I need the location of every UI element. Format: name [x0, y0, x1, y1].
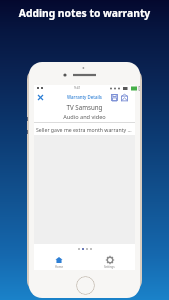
staticText: TV Samsung [34, 103, 135, 111]
staticText: Settings [104, 265, 115, 269]
button[interactable]: Settings [84, 254, 135, 270]
staticText: 9:41 [74, 86, 81, 90]
staticText: Adding notes to warranty [0, 6, 169, 20]
button[interactable]: Save [109, 92, 119, 102]
button[interactable]: Close [35, 92, 45, 102]
staticText: Seller gave me extra month warranty ... [36, 126, 132, 133]
staticText: Warranty Details [34, 94, 135, 100]
button[interactable]: Home [34, 254, 84, 270]
button[interactable]: Mail [119, 92, 129, 102]
staticText: Audio and video [34, 113, 135, 121]
staticText: Home [55, 265, 63, 269]
